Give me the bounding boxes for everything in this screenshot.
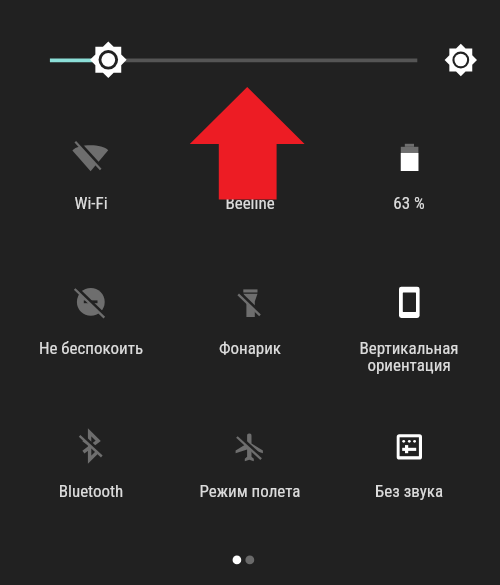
staticText: Режим полета [185,481,315,501]
button[interactable]: Вертикальная ориентация [344,272,474,357]
staticText: Beeline [185,193,315,213]
button[interactable]: Auto brightness [438,38,483,83]
staticText: Фонарик [185,338,315,358]
staticText: Не беспокоить [26,338,156,358]
staticText: 63 % [344,193,474,213]
button[interactable]: Не беспокоить [26,272,156,357]
staticText: Вертикальная ориентация [344,338,474,375]
button[interactable]: Режим полета [185,417,315,502]
staticText: Bluetooth [26,481,156,501]
button[interactable]: Фонарик [185,272,315,357]
button[interactable]: Bluetooth [26,417,156,502]
button[interactable]: Wi-Fi [26,126,156,211]
button[interactable]: Без звука [344,417,474,502]
staticText: Wi-Fi [26,193,156,213]
button[interactable]: Brightness slider [32,36,428,84]
button[interactable]: 63 % [344,126,474,211]
button[interactable]: Beeline [185,126,315,211]
staticText: Без звука [344,481,474,501]
